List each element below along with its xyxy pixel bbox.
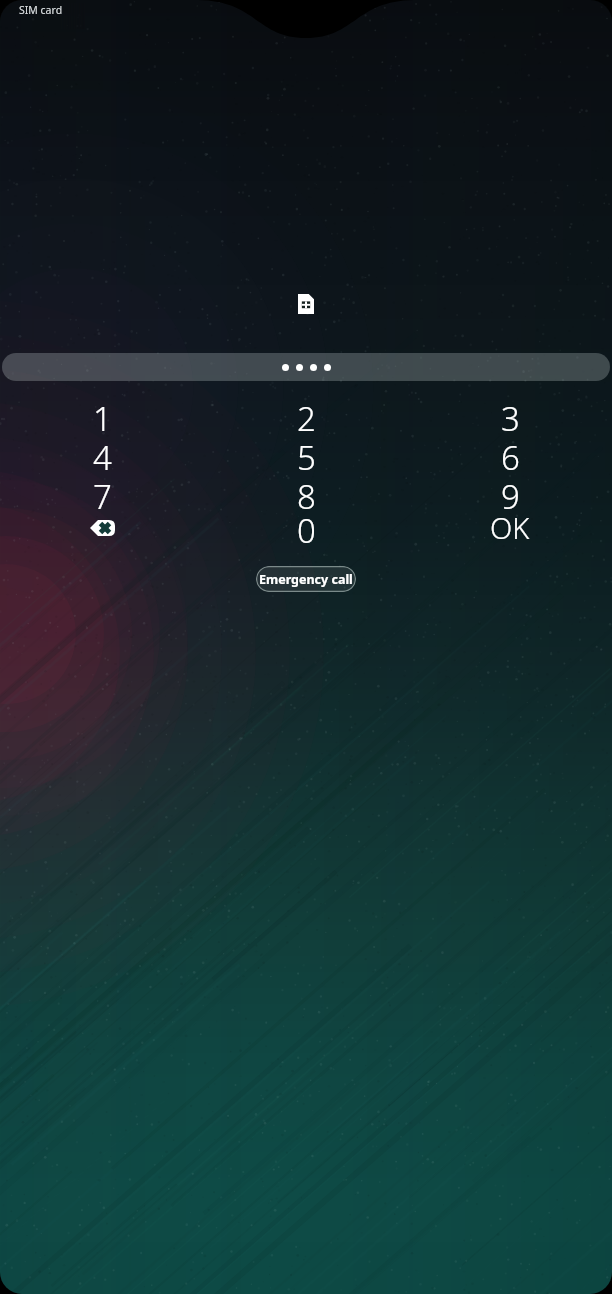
staticText: 3 bbox=[501, 396, 520, 435]
button[interactable]: 7 bbox=[0, 474, 204, 513]
button[interactable]: 2 bbox=[204, 396, 408, 435]
button[interactable]: 5 bbox=[204, 435, 408, 474]
button[interactable]: OK bbox=[408, 513, 612, 552]
staticText: Emergency call bbox=[259, 571, 353, 588]
staticText: OK bbox=[490, 508, 530, 547]
button[interactable]: 6 bbox=[408, 435, 612, 474]
button[interactable]: 1 bbox=[0, 396, 204, 435]
button[interactable]: 3 bbox=[408, 396, 612, 435]
staticText: 7 bbox=[93, 474, 112, 513]
staticText: SIM card locked bbox=[19, 3, 85, 17]
button[interactable]: Emergency call bbox=[256, 566, 356, 592]
staticText: 8 bbox=[297, 474, 316, 513]
button[interactable]: 4 bbox=[0, 435, 204, 474]
staticText: 6 bbox=[501, 435, 520, 474]
button[interactable]: 8 bbox=[204, 474, 408, 513]
button[interactable] bbox=[2, 353, 610, 381]
button[interactable]: Backspace bbox=[0, 513, 204, 552]
button[interactable]: 0 bbox=[204, 513, 408, 552]
staticText: 4 bbox=[93, 435, 112, 474]
staticText: 1 bbox=[93, 396, 112, 435]
staticText: 9 bbox=[501, 474, 520, 513]
staticText: 5 bbox=[297, 435, 316, 474]
staticText: 2 bbox=[297, 396, 316, 435]
button[interactable]: 9 bbox=[408, 474, 612, 513]
staticText: 0 bbox=[297, 508, 316, 547]
